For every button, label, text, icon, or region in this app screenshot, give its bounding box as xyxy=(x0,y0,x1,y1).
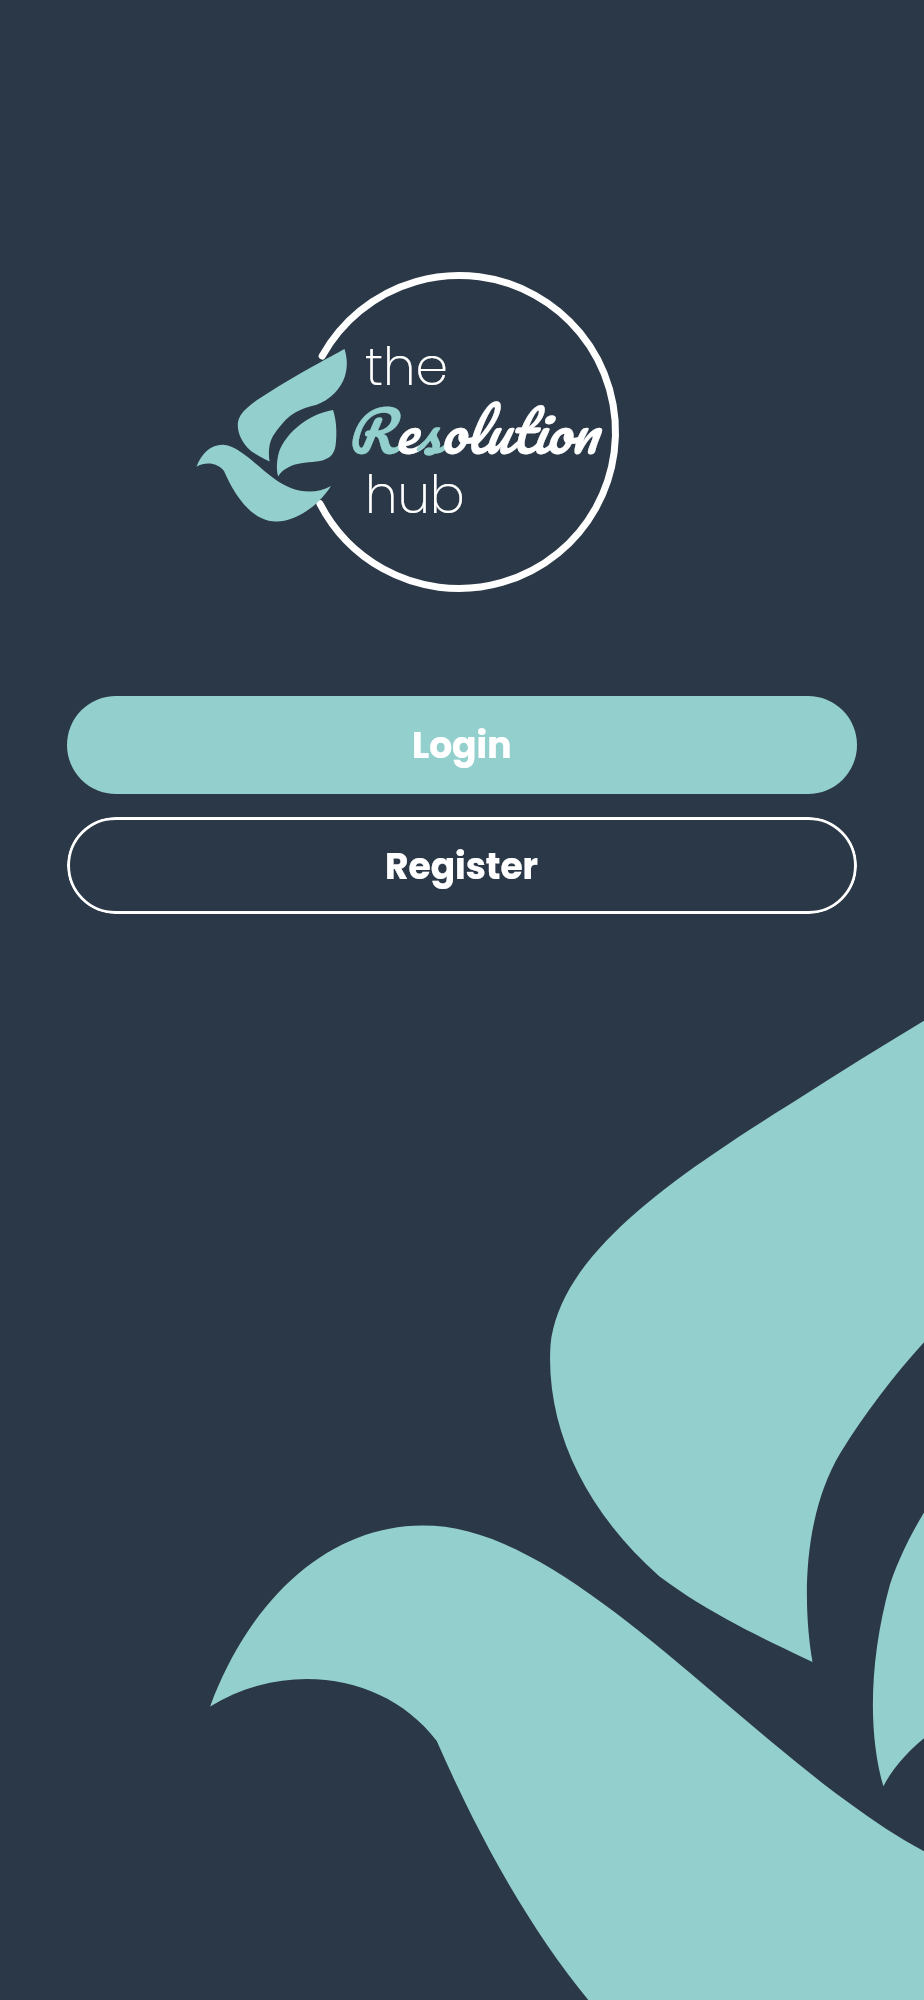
staticText: Login xyxy=(412,720,512,770)
staticText: the xyxy=(365,330,448,403)
staticText: Register xyxy=(385,841,539,891)
staticText: Resolution xyxy=(346,381,598,479)
button[interactable]: Login xyxy=(67,696,857,794)
staticText: hub xyxy=(365,458,465,531)
button[interactable]: Register xyxy=(67,817,857,914)
